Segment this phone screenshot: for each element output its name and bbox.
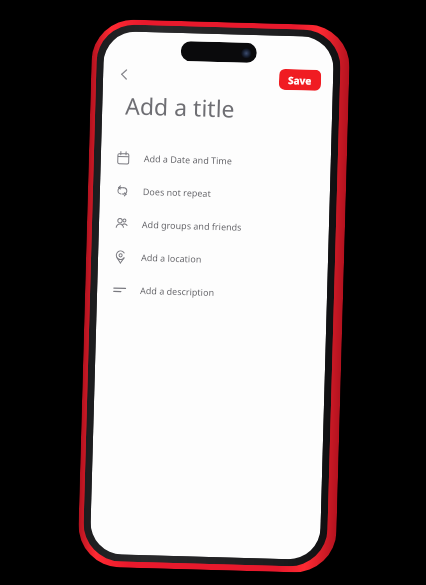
button[interactable]: Add groups and friends xyxy=(99,206,329,245)
staticText: Save xyxy=(288,73,312,88)
button[interactable]: Add a Date and Time xyxy=(100,140,331,179)
staticText: Add a title xyxy=(125,89,236,124)
staticText: Add a Date and Time xyxy=(144,152,233,166)
button[interactable]: Does not repeat xyxy=(99,173,330,212)
staticText: Add a description xyxy=(140,284,214,298)
staticText: Does not repeat xyxy=(143,185,211,199)
staticText: Add groups and friends xyxy=(142,218,242,233)
button[interactable]: Add a location xyxy=(98,239,328,278)
button[interactable]: Add a title xyxy=(125,89,317,126)
button[interactable]: Save xyxy=(279,69,321,91)
button[interactable]: Back xyxy=(111,61,137,88)
staticText: Add a location xyxy=(141,251,202,265)
button[interactable]: Add a description xyxy=(97,272,327,311)
